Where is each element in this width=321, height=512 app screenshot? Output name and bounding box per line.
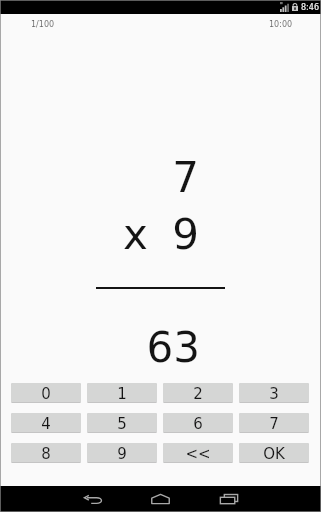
staticText: 5 [117, 415, 127, 432]
staticText: 2 [193, 385, 203, 402]
staticText: x [123, 210, 148, 259]
button[interactable]: OK [239, 443, 309, 463]
button[interactable]: 4 [11, 413, 81, 433]
button[interactable]: 1 [87, 383, 157, 403]
button[interactable]: 8 [11, 443, 81, 463]
staticText: << [185, 445, 211, 462]
button[interactable]: 9 [87, 443, 157, 463]
staticText: 7 [269, 415, 279, 432]
staticText: 1/100 [31, 20, 55, 29]
staticText: 9 [59, 210, 199, 259]
staticText: 4 [41, 415, 51, 432]
button[interactable]: Home [137, 486, 183, 512]
button[interactable]: << [163, 443, 233, 463]
staticText: 6 [193, 415, 203, 432]
button[interactable]: 5 [87, 413, 157, 433]
staticText: 8 [41, 445, 51, 462]
button[interactable]: 3 [239, 383, 309, 403]
button[interactable]: 6 [163, 413, 233, 433]
button[interactable]: 0 [11, 383, 81, 403]
staticText: 1 [117, 385, 127, 402]
staticText: 7 [59, 153, 199, 202]
button[interactable]: 2 [163, 383, 233, 403]
staticText: OK [263, 445, 285, 462]
button[interactable]: 7 [239, 413, 309, 433]
staticText: 0 [41, 385, 51, 402]
staticText: 10:00 [269, 20, 293, 29]
staticText: 3 [269, 385, 279, 402]
staticText: 8:46 [301, 3, 319, 12]
button[interactable]: Recent apps [206, 486, 252, 512]
button[interactable]: Back [70, 486, 116, 512]
staticText: 63 [60, 323, 200, 372]
staticText: 9 [117, 445, 127, 462]
